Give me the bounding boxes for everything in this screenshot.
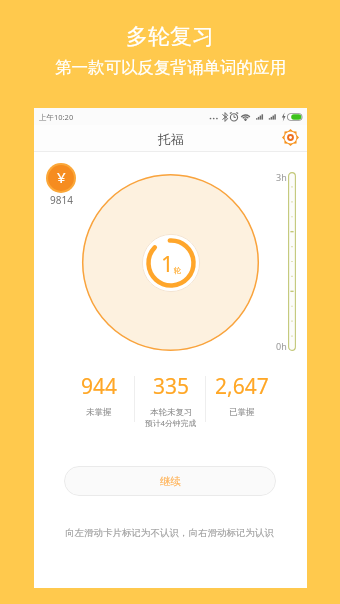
staticText: 0h: [276, 340, 287, 352]
staticText: 多轮复习: [126, 23, 214, 51]
staticText: 未掌握: [86, 407, 112, 418]
staticText: 轮: [174, 266, 182, 275]
staticText: 1: [161, 248, 174, 278]
staticText: 335: [153, 372, 190, 401]
staticText: 托福: [158, 131, 184, 147]
button[interactable]: Coin balance: [46, 163, 76, 193]
staticText: 已掌握: [229, 407, 255, 418]
staticText: 第一款可以反复背诵单词的应用: [55, 57, 286, 78]
staticText: 本轮未复习: [150, 407, 193, 418]
button[interactable]: Settings: [280, 127, 300, 147]
button[interactable]: 继续: [64, 466, 276, 496]
staticText: 3h: [276, 171, 287, 183]
staticText: 944: [81, 372, 118, 401]
staticText: 上午10:20: [39, 112, 74, 122]
staticText: 9814: [50, 193, 73, 207]
staticText: ¥: [57, 167, 66, 187]
staticText: 2,647: [215, 372, 269, 401]
staticText: 向左滑动卡片标记为不认识，向右滑动标记为认识: [65, 527, 274, 539]
staticText: 预计4分钟完成: [145, 418, 197, 429]
staticText: 继续: [160, 475, 181, 488]
